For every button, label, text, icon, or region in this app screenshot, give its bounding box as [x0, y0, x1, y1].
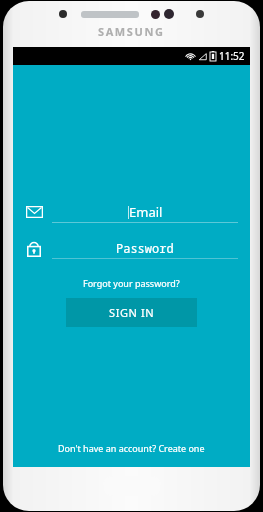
button[interactable]: SIGN IN	[66, 298, 197, 327]
staticText: Email	[129, 203, 163, 221]
button[interactable]: Forgot your password?	[80, 274, 183, 292]
button[interactable]: Email	[52, 202, 238, 222]
staticText: Password	[116, 240, 174, 256]
other: Email	[21, 199, 47, 225]
other: Password	[21, 235, 47, 261]
staticText: SAMSUNG	[98, 24, 165, 39]
staticText: SIGN IN	[109, 305, 155, 320]
staticText: 11:52	[219, 49, 245, 63]
button[interactable]: Don't have an account? Create one	[55, 439, 208, 457]
button[interactable]: Password	[52, 238, 238, 258]
